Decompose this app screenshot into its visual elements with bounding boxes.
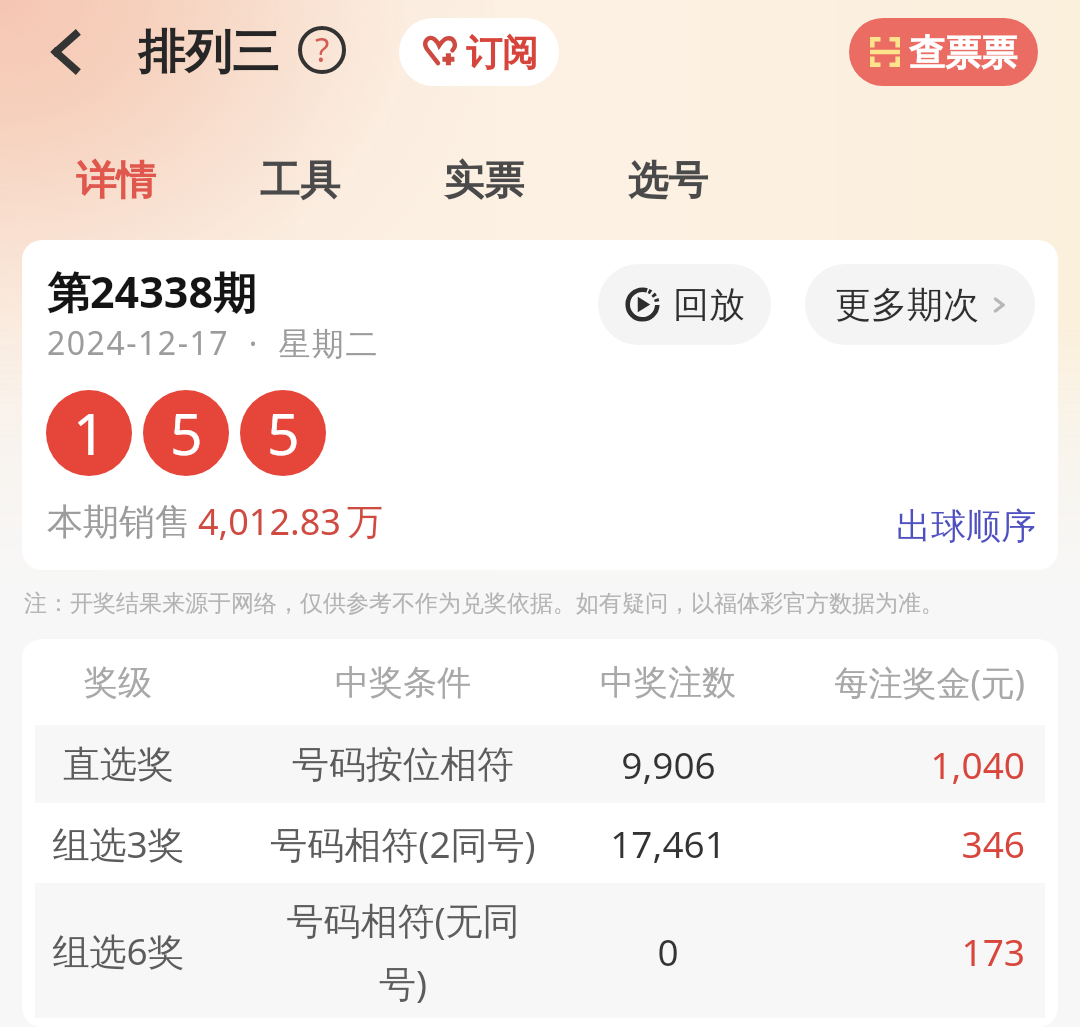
button[interactable]: Back [32, 19, 98, 85]
staticText: 号码按位相符 [292, 741, 514, 788]
staticText: 第24338期 [47, 262, 256, 321]
staticText: 1,040 [930, 739, 1025, 789]
staticText: ? [315, 27, 330, 72]
staticText: 直选奖 [63, 741, 174, 788]
staticText: 回放 [673, 282, 745, 327]
staticText: 17,461 [610, 818, 726, 868]
button[interactable]: 出球顺序 [884, 492, 1048, 560]
button[interactable]: 回放 [598, 264, 771, 345]
staticText: 4,012.83 [198, 497, 341, 546]
staticText: 奖级 [84, 661, 152, 704]
staticText: 排列三 [138, 23, 279, 82]
staticText: 0 [657, 926, 679, 976]
staticText: 工具 [260, 155, 340, 205]
button[interactable]: 实票 [428, 143, 540, 217]
button[interactable]: 更多期次 [805, 264, 1035, 345]
staticText: 订阅 [466, 30, 538, 75]
staticText: 出球顺序 [896, 504, 1036, 548]
staticText: 9,906 [621, 739, 716, 789]
staticText: 组选3奖 [52, 818, 185, 869]
staticText: 选号 [628, 155, 708, 205]
staticText: 注：开奖结果来源于网络，仅供参考不作为兑奖依据。如有疑问，以福体彩官方数据为准。 [24, 589, 944, 618]
staticText: 2024-12-17 · 星期二 [47, 321, 379, 365]
button[interactable]: 工具 [244, 143, 356, 217]
staticText: 号码相符(2同号) [270, 818, 536, 869]
staticText: 173 [961, 926, 1025, 976]
staticText: 更多期次 [835, 282, 979, 327]
staticText: 号码相符(无同 号) [286, 894, 520, 1008]
staticText: 346 [961, 818, 1025, 868]
button[interactable]: 订阅 [399, 18, 559, 86]
staticText: 万 [347, 499, 383, 544]
staticText: 查票票 [909, 30, 1017, 75]
button[interactable]: 选号 [612, 143, 724, 217]
button[interactable]: Help [298, 26, 346, 74]
staticText: 5 [170, 394, 203, 472]
staticText: 详情 [76, 155, 156, 205]
staticText: 本期销售 [47, 499, 191, 544]
button[interactable]: 详情 [60, 143, 172, 217]
staticText: 1 [73, 394, 106, 472]
button[interactable]: 查票票 [849, 18, 1038, 86]
staticText: 实票 [444, 155, 524, 205]
staticText: 中奖条件 [335, 661, 471, 704]
staticText: 中奖注数 [600, 661, 736, 704]
staticText: 5 [267, 394, 300, 472]
staticText: 组选6奖 [52, 925, 185, 976]
staticText: 每注奖金(元) [834, 659, 1025, 705]
